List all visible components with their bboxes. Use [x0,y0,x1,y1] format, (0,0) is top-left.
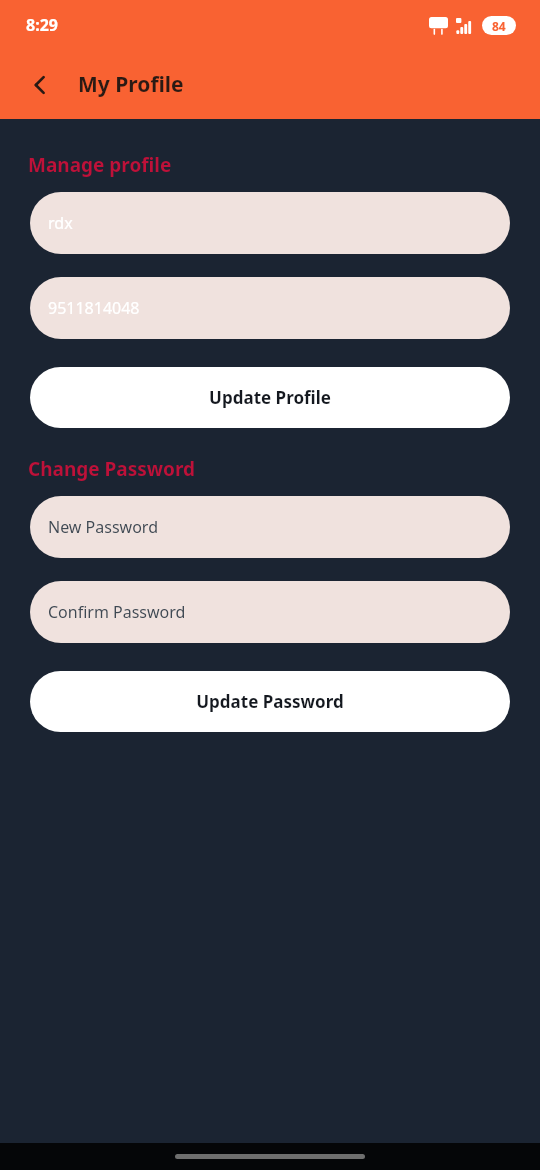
staticText: Confirm Password [48,601,186,623]
staticText: rdx [48,212,73,234]
button[interactable]: Back [14,59,66,111]
button[interactable]: Confirm Password [30,581,510,643]
button[interactable]: rdx [30,192,510,254]
staticText: Update Password [196,690,344,713]
staticText: 9511814048 [48,297,140,319]
staticText: 8:29 [26,14,58,36]
staticText: Change Password [28,456,196,482]
staticText: My Profile [78,70,184,99]
staticText: 84 [492,18,506,34]
button[interactable]: New Password [30,496,510,558]
button[interactable]: Update Password [30,671,510,732]
staticText: Update Profile [209,386,331,409]
staticText: Manage profile [28,152,172,178]
button[interactable]: Update Profile [30,367,510,428]
staticText: New Password [48,516,158,538]
button[interactable]: 9511814048 [30,277,510,339]
